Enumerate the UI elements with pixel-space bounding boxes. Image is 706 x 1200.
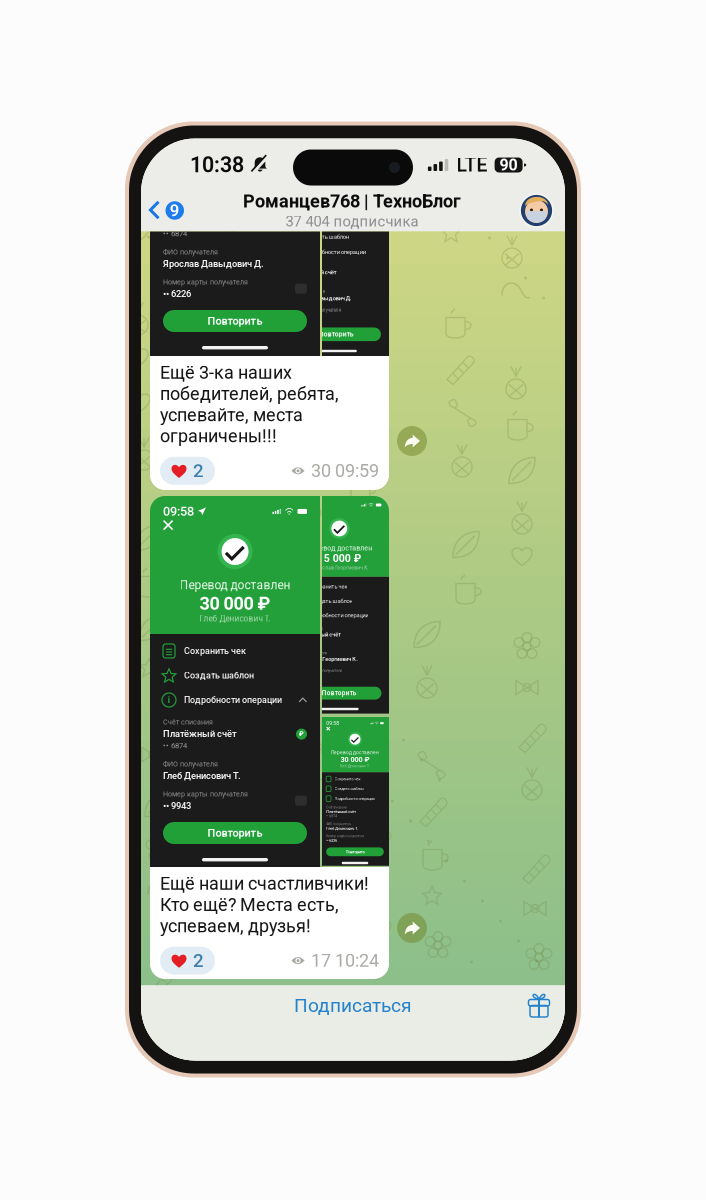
- staticText: 09:58: [326, 720, 339, 726]
- staticText: 30 09:59: [311, 460, 379, 481]
- staticText: 09:58: [163, 504, 194, 519]
- button[interactable]: Forward message: [394, 423, 430, 459]
- staticText: 20 000 ₽: [314, 185, 358, 198]
- staticText: ₽: [299, 218, 304, 226]
- staticText: Сохранить чек: [305, 218, 343, 225]
- staticText: ФИО получателя: [297, 650, 327, 655]
- staticText: Платёжный счёт: [297, 631, 341, 638]
- button[interactable]: Channel profile: [514, 194, 565, 227]
- staticText: 15 000 ₽: [318, 552, 361, 565]
- staticText: Вячеслав Георгиевич К.: [310, 565, 368, 571]
- staticText: Создать шаблон: [305, 233, 349, 240]
- staticText: ограничены!!!: [160, 426, 277, 447]
- staticText: ФИО получателя: [326, 823, 351, 826]
- staticText: Ярослав Давыдович Д.: [292, 295, 352, 302]
- button[interactable]: Подписаться: [171, 985, 535, 1025]
- staticText: •• 6226: [326, 838, 337, 843]
- staticText: Создать шаблон: [335, 786, 364, 791]
- staticText: Перевод доставлен: [306, 544, 372, 552]
- staticText: Повторить: [207, 827, 262, 839]
- staticText: 37 404 подписчика: [285, 213, 418, 230]
- staticText: Счёт списания: [292, 263, 322, 268]
- staticText: 10:38: [190, 152, 244, 177]
- staticText: Номер карты получателя: [163, 790, 248, 798]
- staticText: победителей, ребята,: [160, 383, 339, 404]
- staticText: Кто ещё? Места есть,: [160, 894, 339, 915]
- staticText: 2: [193, 950, 204, 972]
- staticText: Счёт списания: [326, 806, 347, 809]
- staticText: Сохранить чек: [184, 646, 246, 656]
- button[interactable]: 2: [160, 457, 215, 485]
- staticText: Платёжный счёт: [163, 216, 237, 227]
- staticText: Повторить: [322, 689, 357, 697]
- staticText: •• 6874: [163, 741, 187, 750]
- button[interactable]: 2: [160, 947, 215, 975]
- staticText: 17 10:24: [311, 950, 379, 971]
- staticText: Номер карты получателя: [292, 308, 341, 313]
- staticText: Счёт списания: [163, 206, 213, 214]
- staticText: Платёжный счёт: [326, 810, 356, 814]
- staticText: 30 000 ₽: [199, 593, 270, 614]
- staticText: Ещё наши счастливчики!: [160, 873, 369, 894]
- staticText: Подробности операции: [184, 695, 282, 705]
- staticText: Подробности операции: [305, 248, 366, 255]
- staticText: Романцев768 | ТехноБлог: [243, 191, 461, 212]
- staticText: Номер карты получателя: [297, 668, 342, 673]
- staticText: Перевод доставлен: [331, 750, 379, 755]
- staticText: Подробности операции: [309, 612, 368, 619]
- staticText: •• 6874: [163, 229, 187, 238]
- staticText: 09:58: [292, 130, 310, 139]
- staticText: ФИО получателя: [163, 760, 218, 768]
- staticText: Глеб Денисович Т.: [326, 826, 358, 831]
- button[interactable]: Send a gift: [517, 985, 561, 1025]
- staticText: Подробности операции: [335, 796, 375, 801]
- staticText: 90: [500, 156, 518, 174]
- staticText: Создать шаблон: [184, 670, 254, 681]
- staticText: Глеб Денисович Т.: [340, 764, 370, 768]
- staticText: 2: [193, 460, 204, 482]
- staticText: •• 6874: [326, 814, 337, 818]
- staticText: Перевод доставлен: [179, 578, 290, 592]
- staticText: •• 9943: [163, 800, 191, 811]
- staticText: ФИО получателя: [163, 248, 218, 256]
- button[interactable]: 9: [141, 189, 190, 231]
- staticText: ФИО получателя: [292, 289, 325, 294]
- staticText: Подписаться: [294, 994, 412, 1017]
- staticText: Глеб Денисович Т.: [199, 614, 270, 624]
- staticText: Номер карты получателя: [163, 278, 248, 286]
- staticText: успевайте, места: [160, 404, 303, 425]
- staticText: Перевод доставлен: [302, 176, 371, 185]
- staticText: Ярослав Давыдович Д.: [163, 258, 264, 269]
- staticText: Ярослав Давыдович Д.: [308, 198, 365, 204]
- staticText: Глеб Денисович Т.: [163, 770, 241, 781]
- button[interactable]: Forward message: [394, 910, 430, 946]
- staticText: Платёжный счёт: [163, 728, 237, 739]
- staticText: 9: [170, 201, 180, 220]
- staticText: Сохранить чек: [184, 134, 246, 144]
- staticText: Платёжный счёт: [292, 269, 337, 276]
- staticText: Повторить: [319, 330, 354, 338]
- staticText: •• 6226: [163, 288, 191, 299]
- staticText: ₽: [299, 730, 304, 738]
- staticText: 30 000 ₽: [340, 755, 369, 764]
- staticText: Номер карты получателя: [326, 835, 364, 838]
- staticText: Счёт списания: [163, 718, 213, 726]
- staticText: успеваем, друзья!: [160, 915, 311, 936]
- staticText: Создать шаблон: [309, 598, 352, 604]
- staticText: Повторить: [207, 315, 262, 327]
- staticText: Вячеслав Георгиевич К.: [297, 656, 358, 662]
- staticText: •• 6226: [292, 313, 309, 320]
- staticText: 09:58: [297, 501, 315, 509]
- staticText: Повторить: [345, 849, 364, 854]
- staticText: Сохранить чек: [335, 777, 361, 781]
- staticText: i: [167, 694, 170, 706]
